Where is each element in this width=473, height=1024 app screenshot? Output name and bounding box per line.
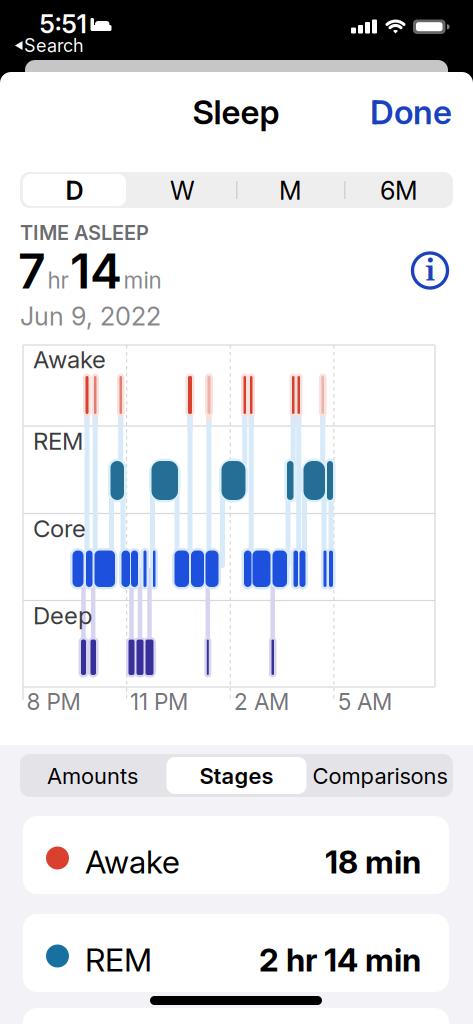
staticText: Awake bbox=[85, 842, 180, 881]
staticText: TIME ASLEEP bbox=[20, 220, 149, 245]
staticText: Amounts bbox=[47, 763, 138, 789]
staticText: min bbox=[123, 266, 161, 294]
staticText: 5 AM bbox=[338, 688, 392, 715]
staticText: 14 bbox=[70, 242, 122, 300]
staticText: 11 PM bbox=[130, 688, 188, 715]
staticText: M bbox=[279, 175, 302, 206]
staticText: Done bbox=[370, 92, 452, 132]
staticText: 5:51 bbox=[39, 9, 86, 39]
staticText: Core bbox=[33, 514, 86, 543]
staticText: REM bbox=[85, 940, 152, 979]
staticText: REM bbox=[33, 426, 83, 455]
staticText: Search bbox=[24, 35, 84, 56]
staticText: W bbox=[170, 175, 195, 206]
staticText: 6M bbox=[380, 175, 418, 206]
staticText: Comparisons bbox=[312, 763, 447, 789]
staticText: Jun 9, 2022 bbox=[20, 301, 161, 332]
staticText: 8 PM bbox=[26, 688, 80, 715]
staticText: 18 min bbox=[325, 842, 421, 881]
staticText: i bbox=[425, 252, 435, 291]
staticText: hr bbox=[47, 266, 68, 294]
staticText: Sleep bbox=[192, 92, 279, 132]
staticText: 2 hr 14 min bbox=[259, 940, 421, 979]
staticText: D bbox=[65, 175, 83, 206]
staticText: Awake bbox=[33, 345, 106, 374]
staticText: 2 AM bbox=[234, 688, 289, 715]
staticText: Stages bbox=[199, 763, 273, 789]
staticText: Deep bbox=[33, 601, 92, 630]
staticText: 7 bbox=[18, 242, 46, 300]
